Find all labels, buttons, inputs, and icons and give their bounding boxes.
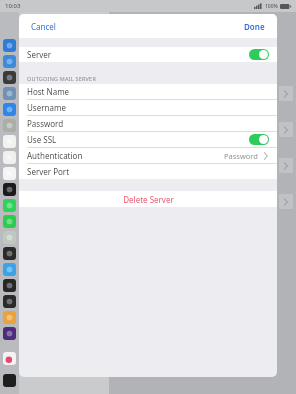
button[interactable]: Toggle <box>249 134 269 145</box>
button[interactable]: Server <box>19 47 277 62</box>
button[interactable]: Server Port <box>19 164 277 179</box>
button[interactable]: TV <box>3 374 16 387</box>
staticText: 100% <box>265 3 278 10</box>
button[interactable]: App 13 <box>3 247 16 260</box>
staticText: Delete Server <box>123 194 174 205</box>
staticText: Password <box>27 118 64 129</box>
button[interactable]: App 14 <box>3 263 16 276</box>
button[interactable]: Host Name <box>19 84 277 100</box>
staticText: Server Port <box>27 166 70 177</box>
button[interactable]: App 10 <box>3 199 16 212</box>
button[interactable]: App 17 <box>3 311 16 324</box>
button[interactable]: App 6 <box>3 135 16 148</box>
button[interactable]: Delete Server <box>19 191 277 207</box>
button[interactable]: App 16 <box>3 295 16 308</box>
button[interactable]: App 12 <box>3 231 16 244</box>
button[interactable]: App 11 <box>3 215 16 228</box>
button[interactable]: Cancel <box>29 19 58 34</box>
button[interactable]: App 5 <box>3 119 16 132</box>
button[interactable]: Toggle <box>249 49 269 60</box>
staticText: OUTGOING MAIL SERVER <box>27 75 96 82</box>
staticText: Username <box>27 102 66 113</box>
button[interactable]: App 2 <box>3 71 16 84</box>
staticText: Cancel <box>31 21 56 32</box>
button[interactable]: App 4 <box>3 103 16 116</box>
staticText: Password <box>224 151 258 161</box>
button[interactable]: Password <box>19 116 277 132</box>
staticText: Host Name <box>27 86 70 97</box>
button[interactable]: App 1 <box>3 55 16 68</box>
button[interactable]: App 8 <box>3 167 16 180</box>
staticText: Use SSL <box>27 134 57 145</box>
button[interactable]: Authentication <box>19 148 277 164</box>
button[interactable]: App 9 <box>3 183 16 196</box>
button[interactable]: Username <box>19 100 277 116</box>
button[interactable]: App 3 <box>3 87 16 100</box>
staticText: 10:03 <box>5 2 21 10</box>
staticText: Authentication <box>27 150 83 161</box>
staticText: Server <box>27 49 52 60</box>
button[interactable]: App 7 <box>3 151 16 164</box>
staticText: Done <box>244 21 265 32</box>
button[interactable]: Use SSL <box>19 132 277 148</box>
button[interactable]: Done <box>242 19 267 34</box>
button[interactable]: App 15 <box>3 279 16 292</box>
button[interactable]: App 18 <box>3 327 16 340</box>
button[interactable]: App 0 <box>3 39 16 52</box>
button[interactable]: Music <box>3 352 16 365</box>
